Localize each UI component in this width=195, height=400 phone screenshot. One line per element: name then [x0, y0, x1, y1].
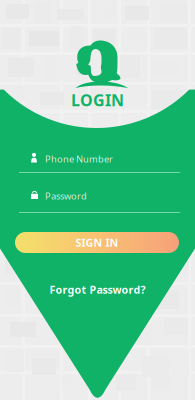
button[interactable]: Forgot Password?: [0, 283, 195, 296]
staticText: LOGIN: [71, 89, 124, 111]
staticText: SIGN IN: [75, 235, 118, 250]
staticText: Password: [45, 190, 87, 202]
staticText: Forgot Password?: [49, 282, 145, 297]
staticText: Phone Number: [45, 153, 113, 165]
button[interactable]: SIGN IN: [15, 232, 179, 253]
